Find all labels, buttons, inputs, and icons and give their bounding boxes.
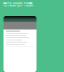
staticText: WRITE. SHARE. POWER	[3, 2, 33, 5]
staticText: TO YOUR LIST TODAY	[3, 4, 34, 7]
